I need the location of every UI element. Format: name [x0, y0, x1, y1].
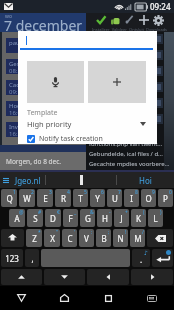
button[interactable]: G	[80, 209, 95, 227]
staticText: 7	[118, 189, 121, 196]
button[interactable]: Shift	[1, 229, 24, 247]
staticText: W	[23, 193, 31, 204]
button[interactable]: N	[113, 229, 128, 247]
button[interactable]: J	[114, 209, 129, 227]
button[interactable]: Down	[44, 269, 85, 285]
staticText: 9	[152, 189, 155, 196]
staticText: ♪	[144, 249, 148, 256]
button[interactable]: Jgeo.nl	[11, 172, 45, 188]
staticText: 09:15	[9, 88, 25, 95]
staticText: ;	[108, 229, 110, 236]
staticText: T	[78, 193, 83, 204]
button[interactable]: Voice input	[27, 61, 84, 103]
button[interactable]: R	[55, 189, 71, 207]
staticText: 5	[84, 189, 87, 196]
staticText: J	[120, 213, 123, 224]
button[interactable]: Right	[131, 269, 173, 285]
staticText: Gebundelde, ical files / d...	[89, 150, 163, 158]
staticText: &	[90, 209, 94, 216]
button[interactable]: Template	[27, 108, 146, 129]
button[interactable]: 123	[1, 249, 23, 267]
staticText: Morgen, do 8 dec.	[6, 157, 62, 166]
staticText: Gecachte mpdies voorbere...	[89, 160, 170, 168]
staticText: €	[57, 209, 60, 216]
button[interactable]: Hide keyboard	[130, 286, 174, 310]
button[interactable]: Y	[90, 189, 105, 207]
staticText: 6	[101, 189, 104, 196]
button[interactable]: Home	[43, 286, 86, 310]
staticText: !	[125, 229, 127, 236]
button[interactable]: F	[63, 209, 78, 227]
staticText: Template	[27, 108, 58, 118]
staticText: S	[33, 213, 38, 224]
button[interactable]: Add	[88, 61, 146, 103]
staticText: 16:00	[9, 109, 25, 116]
staticText: pauze	[9, 39, 26, 47]
staticText: U	[112, 193, 118, 204]
button[interactable]: M	[130, 229, 145, 247]
staticText: F	[68, 213, 73, 224]
staticText: 123	[5, 253, 19, 264]
button[interactable]: ,	[25, 249, 39, 267]
staticText: R	[61, 193, 66, 204]
staticText: C	[67, 233, 73, 244]
button[interactable]	[46, 172, 116, 188]
button[interactable]: L	[148, 209, 163, 227]
staticText: @	[19, 209, 24, 216]
staticText: N	[117, 233, 124, 244]
staticText: "	[56, 229, 59, 236]
staticText: 1	[13, 189, 16, 196]
staticText: :	[91, 229, 93, 236]
button[interactable]: E	[37, 189, 53, 207]
staticText: 7 december	[4, 16, 83, 32]
staticText: functions.php van twent...	[89, 140, 163, 148]
button[interactable]: V	[79, 229, 94, 247]
button[interactable]: Backspace	[147, 229, 173, 247]
staticText: *	[38, 229, 41, 236]
button[interactable]: Hoi	[117, 172, 174, 188]
button[interactable]: D	[45, 209, 61, 227]
staticText: Gesprek	[9, 60, 33, 68]
staticText: 4	[67, 189, 70, 196]
button[interactable]: Up	[1, 269, 42, 285]
button[interactable]: Q	[1, 189, 17, 207]
button[interactable]: I	[124, 189, 139, 207]
button[interactable]: X	[44, 229, 60, 247]
button[interactable]: B	[96, 229, 111, 247]
button[interactable]: Keyboard options	[0, 172, 11, 188]
button[interactable]: S	[27, 209, 43, 227]
staticText: '	[74, 229, 76, 236]
staticText: P	[163, 193, 168, 204]
button[interactable]: Back	[0, 286, 43, 310]
button[interactable]: T	[73, 189, 88, 207]
staticText: r e...	[141, 69, 152, 76]
staticText: Hoi	[139, 175, 152, 186]
staticText: _	[74, 209, 77, 216]
staticText: (	[143, 209, 145, 216]
button[interactable]: P	[158, 189, 173, 207]
button[interactable]: O	[141, 189, 156, 207]
button[interactable]: K	[131, 209, 146, 227]
button[interactable]: H	[97, 209, 112, 227]
staticText: 16:30	[9, 130, 25, 137]
button[interactable]: Z	[26, 229, 42, 247]
button[interactable]: Notify task creation	[27, 134, 103, 144]
staticText: M	[134, 233, 142, 244]
button[interactable]: .	[132, 249, 150, 267]
staticText: +	[125, 209, 128, 216]
staticText: I	[130, 193, 133, 204]
staticText: Notify task creation	[39, 134, 103, 144]
button[interactable]: Enter	[152, 249, 173, 267]
staticText: 2	[31, 189, 34, 196]
button[interactable]: Recents	[86, 286, 130, 310]
staticText: Q	[6, 193, 13, 204]
button[interactable]: A	[9, 209, 25, 227]
staticText: High priority	[27, 119, 72, 129]
button[interactable]: W	[19, 189, 35, 207]
staticText: -	[109, 209, 111, 216]
button[interactable]: C	[62, 229, 77, 247]
staticText: Inventaris	[9, 123, 38, 131]
button[interactable]: Left	[87, 269, 129, 285]
button[interactable]: U	[107, 189, 122, 207]
